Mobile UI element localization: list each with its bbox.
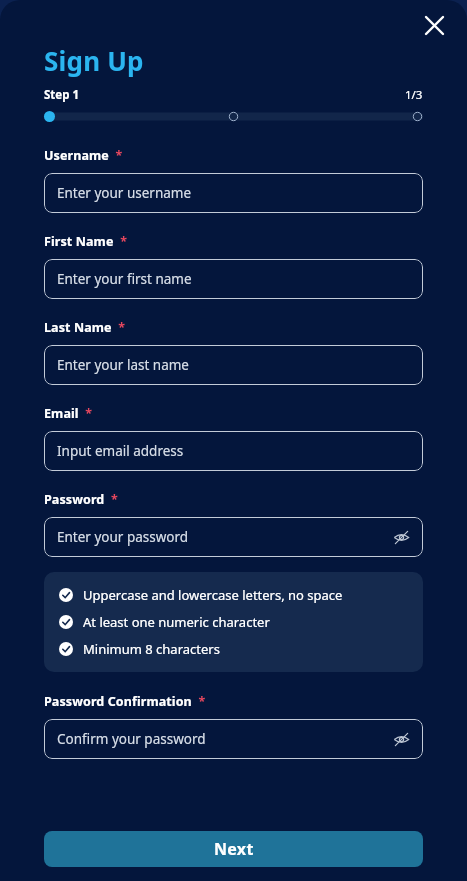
staticText: Enter your last name [57,356,189,374]
staticText: Enter your first name [57,270,192,288]
button[interactable]: Enter your password [44,517,423,557]
staticText: Email * [44,405,93,422]
staticText: Sign Up [44,43,144,78]
staticText: Step 1 [44,87,80,103]
button[interactable]: Enter your username [44,173,423,213]
button[interactable]: Show password [393,731,410,748]
button[interactable]: Confirm your password [44,719,423,759]
staticText: Password * [44,491,118,508]
button[interactable]: Next [44,831,423,867]
button[interactable]: Show password [393,529,410,546]
staticText: Minimum 8 characters [83,640,220,658]
staticText: Enter your username [57,184,192,202]
staticText: Username * [44,147,123,164]
staticText: Next [214,838,254,860]
button[interactable]: Enter your first name [44,259,423,299]
staticText: Uppercase and lowercase letters, no spac… [83,586,343,604]
staticText: Enter your password [57,528,189,546]
staticText: At least one numeric character [83,613,270,631]
button[interactable]: Close [417,8,451,42]
button[interactable]: Input email address [44,431,423,471]
staticText: Password Confirmation * [44,693,206,710]
staticText: 1/3 [405,87,423,103]
staticText: Confirm your password [57,730,206,748]
button[interactable]: Enter your last name [44,345,423,385]
staticText: Last Name * [44,319,126,336]
staticText: First Name * [44,233,128,250]
staticText: Input email address [57,442,184,460]
